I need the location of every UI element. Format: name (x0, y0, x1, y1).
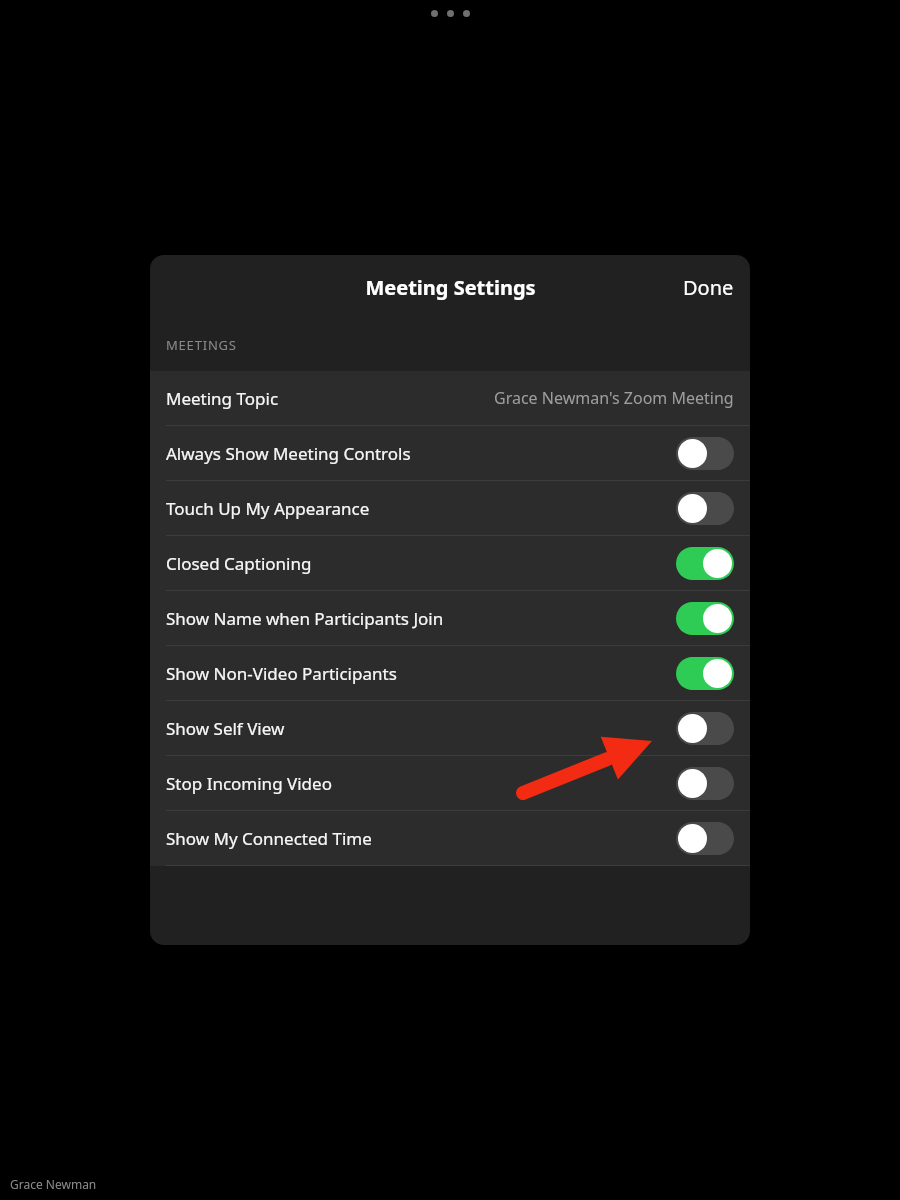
button[interactable]: Closed Captioning (150, 536, 750, 590)
button[interactable]: Touch Up My Appearance (150, 481, 750, 535)
staticText: MEETINGS (166, 336, 237, 354)
staticText: Meeting Settings (365, 274, 536, 301)
staticText: Show Name when Participants Join (166, 607, 444, 630)
staticText: Done (683, 274, 734, 301)
button[interactable]: Stop Incoming Video (676, 767, 734, 800)
staticText: Grace Newman's Zoom Meeting (494, 387, 734, 409)
button[interactable]: Show Self View (150, 701, 750, 755)
button[interactable]: Show Non-Video Participants (150, 646, 750, 700)
staticText: Show My Connected Time (166, 827, 372, 850)
button[interactable]: Show Name when Participants Join (150, 591, 750, 645)
staticText: Closed Captioning (166, 552, 312, 575)
button[interactable]: Stop Incoming Video (150, 756, 750, 810)
button[interactable]: Closed Captioning (676, 547, 734, 580)
staticText: Stop Incoming Video (166, 772, 332, 795)
button[interactable]: Meeting Topic (150, 371, 750, 425)
button[interactable]: Show My Connected Time (676, 822, 734, 855)
button[interactable]: Always Show Meeting Controls (676, 437, 734, 470)
staticText: Grace Newman (10, 1176, 97, 1192)
staticText: Show Non-Video Participants (166, 662, 397, 685)
staticText: Touch Up My Appearance (166, 497, 370, 520)
staticText: Meeting Topic (166, 387, 279, 410)
button[interactable]: Show Self View (676, 712, 734, 745)
button[interactable]: Touch Up My Appearance (676, 492, 734, 525)
button[interactable]: Always Show Meeting Controls (150, 426, 750, 480)
button[interactable]: Done (667, 264, 750, 311)
button[interactable]: Show Non-Video Participants (676, 657, 734, 690)
staticText: Show Self View (166, 717, 285, 740)
button[interactable]: Show My Connected Time (150, 811, 750, 865)
staticText: Always Show Meeting Controls (166, 442, 411, 465)
button[interactable]: Show Name when Participants Join (676, 602, 734, 635)
